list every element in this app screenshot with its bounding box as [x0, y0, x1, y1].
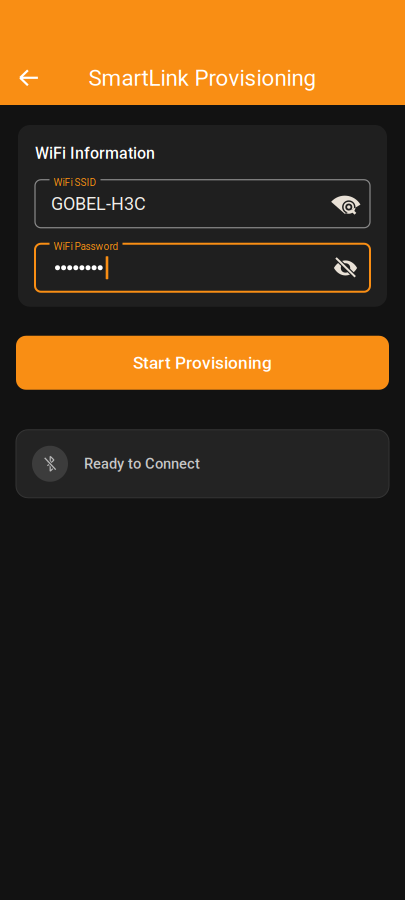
- button[interactable]: Ready to Connect: [16, 430, 389, 498]
- staticText: Start Provisioning: [133, 353, 272, 373]
- staticText: Ready to Connect: [84, 455, 200, 472]
- button[interactable]: Start Provisioning: [16, 336, 389, 390]
- staticText: WiFi SSID: [53, 177, 96, 188]
- staticText: WiFi Information: [35, 144, 155, 163]
- button[interactable]: Back: [0, 55, 54, 101]
- staticText: SmartLink Provisioning: [88, 65, 316, 91]
- button[interactable]: Scan for WiFi networks: [331, 193, 358, 214]
- button[interactable]: Show password: [333, 257, 358, 279]
- staticText: GOBEL-H3C: [51, 193, 146, 214]
- staticText: WiFi Password: [53, 241, 118, 252]
